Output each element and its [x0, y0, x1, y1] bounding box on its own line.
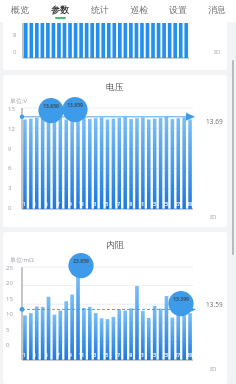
staticText: 0 [13, 48, 17, 56]
staticText: ID [214, 48, 221, 56]
staticText: 1 [23, 201, 26, 207]
staticText: 10 [6, 310, 13, 318]
staticText: 统计 [91, 4, 109, 15]
staticText: 17 [115, 201, 121, 207]
staticText: 15 [6, 295, 13, 303]
button[interactable]: 8 [3, 22, 227, 70]
button[interactable]: 参数 [40, 0, 80, 22]
staticText: 27 [175, 201, 181, 207]
staticText: 13.399 [173, 296, 189, 303]
button[interactable]: 内阻 [3, 232, 227, 384]
button[interactable]: 消息 [197, 0, 236, 22]
staticText: 5 [45, 201, 48, 207]
staticText: 9 [69, 201, 72, 207]
staticText: 19 [127, 201, 133, 207]
staticText: 13.59 [206, 300, 223, 309]
staticText: 单位:V [10, 97, 28, 105]
staticText: 15 [103, 201, 109, 207]
staticText: 6 [8, 164, 12, 172]
staticText: 电压 [106, 81, 124, 92]
staticText: 9 [69, 352, 72, 358]
staticText: 21 [139, 201, 145, 207]
button[interactable]: 概览 [0, 0, 40, 22]
staticText: 21 [139, 352, 145, 358]
staticText: 17 [115, 352, 121, 358]
staticText: 13 [91, 201, 97, 207]
button[interactable]: 设置 [158, 0, 197, 22]
staticText: 8 [13, 31, 17, 39]
button[interactable]: 电压 [3, 75, 227, 227]
staticText: 9 [8, 145, 12, 153]
staticText: 7 [57, 201, 60, 207]
staticText: 12 [8, 125, 15, 133]
staticText: 29 [187, 201, 193, 207]
staticText: 11 [79, 201, 85, 207]
staticText: 25 [163, 201, 169, 207]
staticText: 内阻 [106, 239, 124, 250]
staticText: 13.859 [67, 102, 83, 109]
staticText: 11 [79, 352, 85, 358]
staticText: 25 [6, 264, 13, 272]
staticText: 15 [103, 352, 109, 358]
staticText: 0 [6, 341, 10, 349]
staticText: 23 [151, 201, 157, 207]
staticText: 消息 [208, 4, 226, 15]
staticText: 13 [91, 352, 97, 358]
staticText: 13.650 [43, 103, 59, 110]
staticText: 概览 [11, 4, 29, 15]
staticText: ID [210, 213, 217, 221]
button[interactable]: 巡检 [119, 0, 158, 22]
staticText: 13.69 [206, 117, 223, 126]
staticText: 设置 [169, 4, 187, 15]
staticText: 27 [175, 352, 181, 358]
staticText: 5 [6, 326, 10, 334]
staticText: 0 [8, 204, 12, 212]
staticText: 25 [163, 352, 169, 358]
staticText: 单位:mΩ [10, 256, 34, 264]
staticText: 5 [45, 352, 48, 358]
staticText: 15 [8, 105, 15, 113]
staticText: 巡检 [130, 4, 148, 15]
staticText: 3 [33, 352, 36, 358]
staticText: 19 [127, 352, 133, 358]
staticText: 7 [57, 352, 60, 358]
staticText: 1 [23, 352, 26, 358]
staticText: 23.859 [73, 258, 89, 265]
staticText: 参数 [51, 4, 69, 15]
staticText: 23 [151, 352, 157, 358]
staticText: ID [210, 365, 217, 373]
button[interactable]: 统计 [80, 0, 119, 22]
staticText: 29 [187, 352, 193, 358]
staticText: 20 [6, 279, 13, 287]
staticText: 3 [33, 201, 36, 207]
staticText: 3 [8, 184, 12, 192]
